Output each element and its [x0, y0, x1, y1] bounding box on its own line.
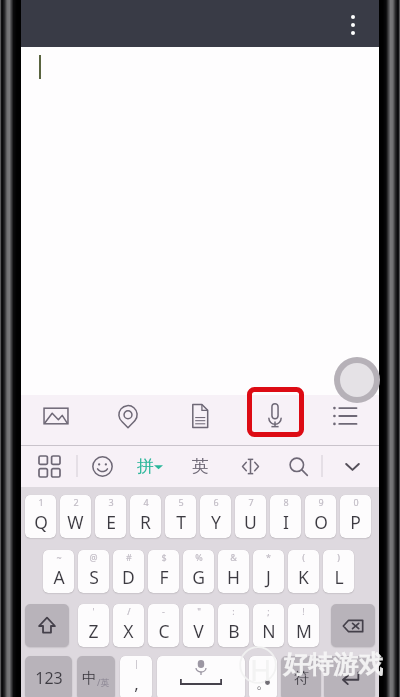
staticText: 3: [108, 496, 114, 508]
staticText: 好特游戏: [283, 649, 383, 680]
staticText: 拼: [137, 456, 154, 477]
button[interactable]: Emoji: [81, 445, 123, 487]
staticText: 6: [213, 496, 219, 508]
staticText: Z: [88, 619, 99, 643]
staticText: B: [228, 619, 240, 643]
button[interactable]: $: [148, 550, 179, 593]
staticText: $: [161, 551, 167, 563]
staticText: #: [126, 551, 132, 563]
staticText: J: [266, 565, 271, 589]
staticText: |: [134, 657, 139, 669]
button[interactable]: 0: [340, 495, 371, 538]
button[interactable]: Assistive touch: [334, 357, 380, 403]
button[interactable]: 7: [235, 495, 266, 538]
button[interactable]: Search: [277, 445, 319, 487]
staticText: ~: [56, 551, 62, 563]
staticText: 中: [82, 669, 97, 688]
button[interactable]: Shift: [25, 604, 69, 647]
staticText: O: [314, 510, 328, 534]
button[interactable]: 8: [270, 495, 301, 538]
staticText: -: [162, 605, 165, 617]
staticText: !: [302, 605, 305, 617]
button[interactable]: Voice input: [246, 391, 304, 441]
button[interactable]: %: [183, 550, 214, 593]
button[interactable]: 3: [95, 495, 126, 538]
staticText: Q: [34, 510, 48, 534]
staticText: ,: [134, 672, 139, 695]
button[interactable]: 中: [77, 656, 115, 697]
staticText: E: [106, 510, 116, 534]
staticText: ): [337, 551, 340, 563]
staticText: X: [123, 619, 134, 643]
staticText: W: [67, 510, 84, 534]
staticText: V: [193, 619, 204, 643]
staticText: Y: [211, 510, 221, 534]
button[interactable]: 英: [178, 445, 222, 487]
staticText: :: [232, 605, 235, 617]
staticText: ": [197, 605, 201, 617]
staticText: @: [89, 551, 98, 563]
staticText: 1: [38, 496, 44, 508]
staticText: K: [298, 565, 309, 589]
button[interactable]: 拼: [128, 445, 172, 487]
staticText: *: [266, 551, 271, 563]
button[interactable]: ): [323, 550, 354, 593]
button[interactable]: Enter: [324, 656, 375, 697]
button[interactable]: Space: [157, 656, 245, 697]
staticText: %: [195, 551, 203, 563]
button[interactable]: /: [113, 604, 144, 647]
button[interactable]: Insert image: [27, 391, 85, 441]
button[interactable]: 符: [281, 656, 321, 697]
button[interactable]: |: [120, 656, 152, 697]
staticText: 123: [35, 667, 63, 689]
button[interactable]: Location: [99, 391, 157, 441]
staticText: H: [227, 565, 240, 589]
button[interactable]: 123: [25, 656, 72, 697]
button[interactable]: ': [78, 604, 109, 647]
button[interactable]: -: [148, 604, 179, 647]
button[interactable]: Move cursor: [229, 445, 271, 487]
staticText: G: [192, 565, 205, 589]
staticText: A: [53, 565, 65, 589]
staticText: ;: [267, 605, 270, 617]
button[interactable]: *: [253, 550, 284, 593]
staticText: 4: [143, 496, 149, 508]
button[interactable]: @: [78, 550, 109, 593]
staticText: T: [176, 510, 186, 534]
staticText: /英: [97, 676, 110, 688]
staticText: C: [158, 619, 170, 643]
button[interactable]: 1: [25, 495, 56, 538]
staticText: 0: [353, 496, 359, 508]
button[interactable]: :: [218, 604, 249, 647]
staticText: 英: [192, 456, 209, 477]
button[interactable]: 4: [130, 495, 161, 538]
button[interactable]: #: [113, 550, 144, 593]
staticText: /: [127, 605, 131, 617]
staticText: 5: [178, 496, 184, 508]
staticText: 符: [294, 669, 309, 688]
button[interactable]: More options: [335, 6, 371, 42]
button[interactable]: Panel: [28, 445, 70, 487]
staticText: M: [296, 619, 312, 643]
button[interactable]: ~: [43, 550, 74, 593]
button[interactable]: 5: [165, 495, 196, 538]
button[interactable]: ;: [253, 604, 284, 647]
staticText: F: [159, 565, 169, 589]
staticText: H: [250, 650, 272, 689]
button[interactable]: 。: [249, 656, 277, 697]
button[interactable]: !: [288, 604, 319, 647]
button[interactable]: 2: [60, 495, 91, 538]
staticText: 9: [318, 496, 324, 508]
button[interactable]: Backspace: [331, 604, 375, 647]
button[interactable]: &: [218, 550, 249, 593]
button[interactable]: 6: [200, 495, 231, 538]
button[interactable]: Hide keyboard: [331, 445, 373, 487]
button[interactable]: ": [183, 604, 214, 647]
button[interactable]: Document: [171, 391, 229, 441]
button[interactable]: 9: [305, 495, 336, 538]
staticText: D: [122, 565, 135, 589]
staticText: &: [230, 551, 237, 563]
staticText: L: [334, 565, 344, 589]
button[interactable]: (: [288, 550, 319, 593]
button[interactable]: List: [316, 391, 374, 441]
